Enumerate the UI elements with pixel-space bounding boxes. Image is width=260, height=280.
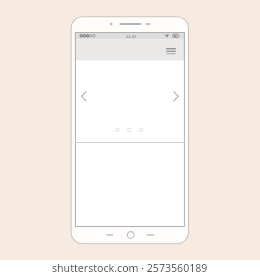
button[interactable]: Open navigation menu bbox=[156, 41, 174, 59]
button[interactable]: Content area bbox=[75, 143, 185, 226]
button[interactable]: Home bbox=[126, 230, 135, 239]
button[interactable]: Previous bbox=[76, 88, 92, 104]
staticText: 24:00 bbox=[126, 34, 137, 39]
button[interactable]: Next bbox=[167, 88, 183, 104]
button[interactable]: Open navigation menu bbox=[75, 39, 185, 60]
staticText: shutterstock.com · 2573560189 bbox=[52, 261, 208, 275]
button[interactable]: Go to page 1 bbox=[114, 125, 118, 135]
button[interactable]: Go to page 3 bbox=[138, 125, 142, 135]
button[interactable]: Go to page 2 bbox=[126, 125, 130, 135]
